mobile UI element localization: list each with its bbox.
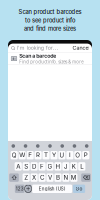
staticText: P [84, 151, 88, 159]
staticText: B [56, 174, 60, 181]
button[interactable]: N [62, 173, 69, 182]
button[interactable]: U [58, 151, 65, 159]
staticText: A [16, 163, 20, 170]
staticText: G [47, 163, 52, 170]
staticText: V [48, 174, 52, 181]
staticText: L [80, 163, 83, 170]
button[interactable]: Go [73, 185, 85, 193]
button[interactable]: Y [50, 151, 58, 159]
button[interactable]: V [46, 173, 54, 182]
button[interactable]: D [30, 162, 38, 171]
staticText: Z [24, 174, 28, 181]
staticText: K [72, 163, 76, 170]
staticText: I [69, 151, 71, 159]
staticText: I'm looking for... [17, 45, 59, 51]
staticText: X [32, 174, 36, 181]
staticText: Find product info, sizes & more [19, 59, 83, 65]
button[interactable]: A [15, 162, 22, 171]
staticText: C [40, 174, 44, 181]
button[interactable]: G [46, 162, 54, 171]
staticText: English (US) [39, 186, 66, 192]
button[interactable]: W [19, 151, 26, 159]
button[interactable]: I [66, 151, 73, 159]
button[interactable]: F [38, 162, 46, 171]
staticText: 123 [16, 186, 24, 192]
staticText: D [32, 163, 36, 170]
button[interactable]: English (US) [32, 185, 72, 193]
button[interactable]: ⌫ [81, 173, 91, 182]
staticText: to see product info [25, 17, 75, 24]
button[interactable]: S [23, 162, 30, 171]
button[interactable]: P [82, 151, 89, 159]
button[interactable]: L [78, 162, 85, 171]
button[interactable]: Scan a barcode [8, 53, 92, 65]
staticText: Q [12, 151, 17, 159]
staticText: S [24, 163, 28, 170]
button[interactable]: ⇧ [9, 173, 19, 182]
staticText: E [28, 151, 32, 159]
staticText: and find more sizes [24, 25, 76, 32]
button[interactable]: O [74, 151, 81, 159]
button[interactable]: C [38, 173, 46, 182]
staticText: W [19, 151, 25, 159]
button[interactable]: M [70, 173, 77, 182]
staticText: R [36, 151, 40, 159]
button[interactable]: ⊕ [25, 185, 31, 193]
button[interactable]: H [54, 162, 62, 171]
staticText: H [55, 163, 60, 170]
button[interactable]: Z [23, 173, 30, 182]
staticText: O [75, 151, 80, 159]
button[interactable]: K [70, 162, 77, 171]
staticText: Cancel [72, 45, 89, 51]
staticText: T [44, 151, 48, 159]
staticText: Y [52, 151, 56, 159]
staticText: Go [75, 186, 82, 192]
staticText: F [40, 163, 44, 170]
button[interactable]: J [62, 162, 69, 171]
button[interactable]: X [30, 173, 38, 182]
staticText: J [64, 163, 68, 170]
staticText: Scan a barcode [19, 53, 56, 59]
staticText: U [59, 151, 64, 159]
button[interactable]: Cancel [68, 45, 89, 51]
staticText: ⌫ [82, 174, 89, 181]
staticText: M [71, 174, 77, 181]
staticText: ⊕ [24, 185, 32, 192]
staticText: ⇧ [11, 174, 17, 181]
button[interactable]: B [54, 173, 62, 182]
button[interactable]: T [42, 151, 50, 159]
button[interactable]: R [34, 151, 42, 159]
staticText: N [63, 174, 68, 181]
staticText: Scan product barcodes [18, 8, 81, 15]
button[interactable]: 123 [15, 185, 24, 193]
button[interactable]: Q [11, 151, 18, 159]
button[interactable]: E [26, 151, 34, 159]
